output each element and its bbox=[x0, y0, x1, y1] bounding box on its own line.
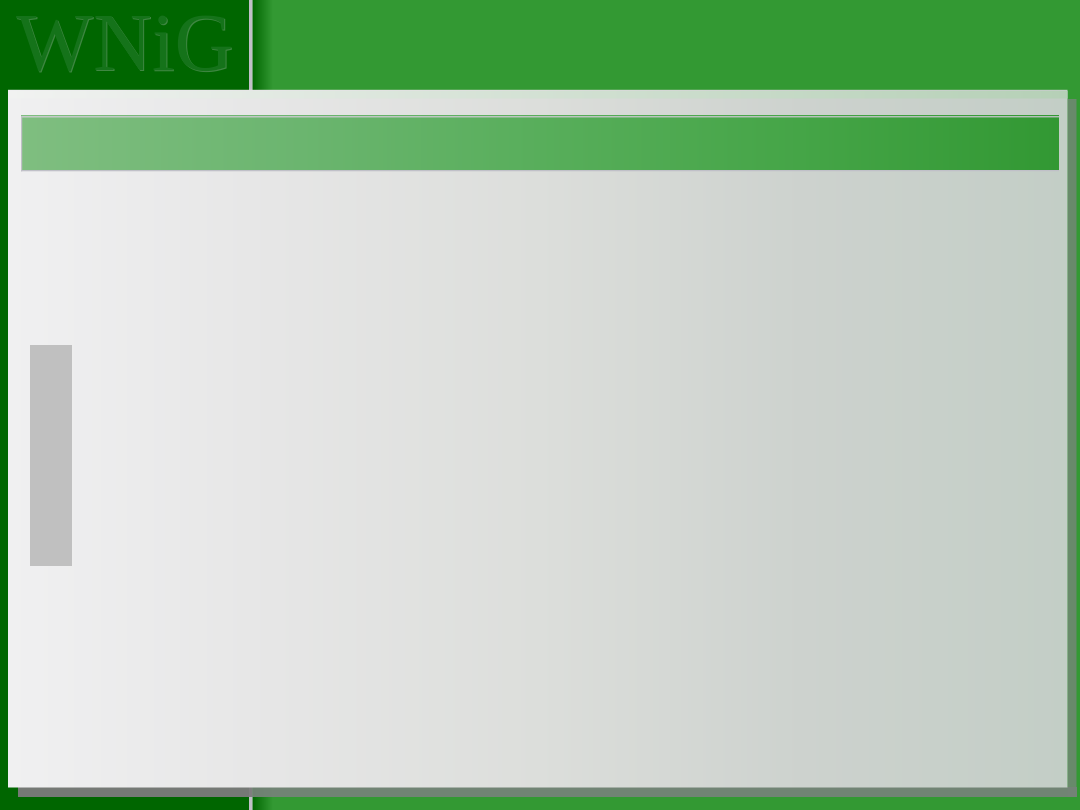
staticText: WNiG bbox=[16, 0, 234, 87]
staticText: WNiG bbox=[17, 0, 235, 88]
button[interactable]: Navigation bar bbox=[21, 115, 1059, 171]
button[interactable]: WNiG home bbox=[16, 0, 234, 87]
